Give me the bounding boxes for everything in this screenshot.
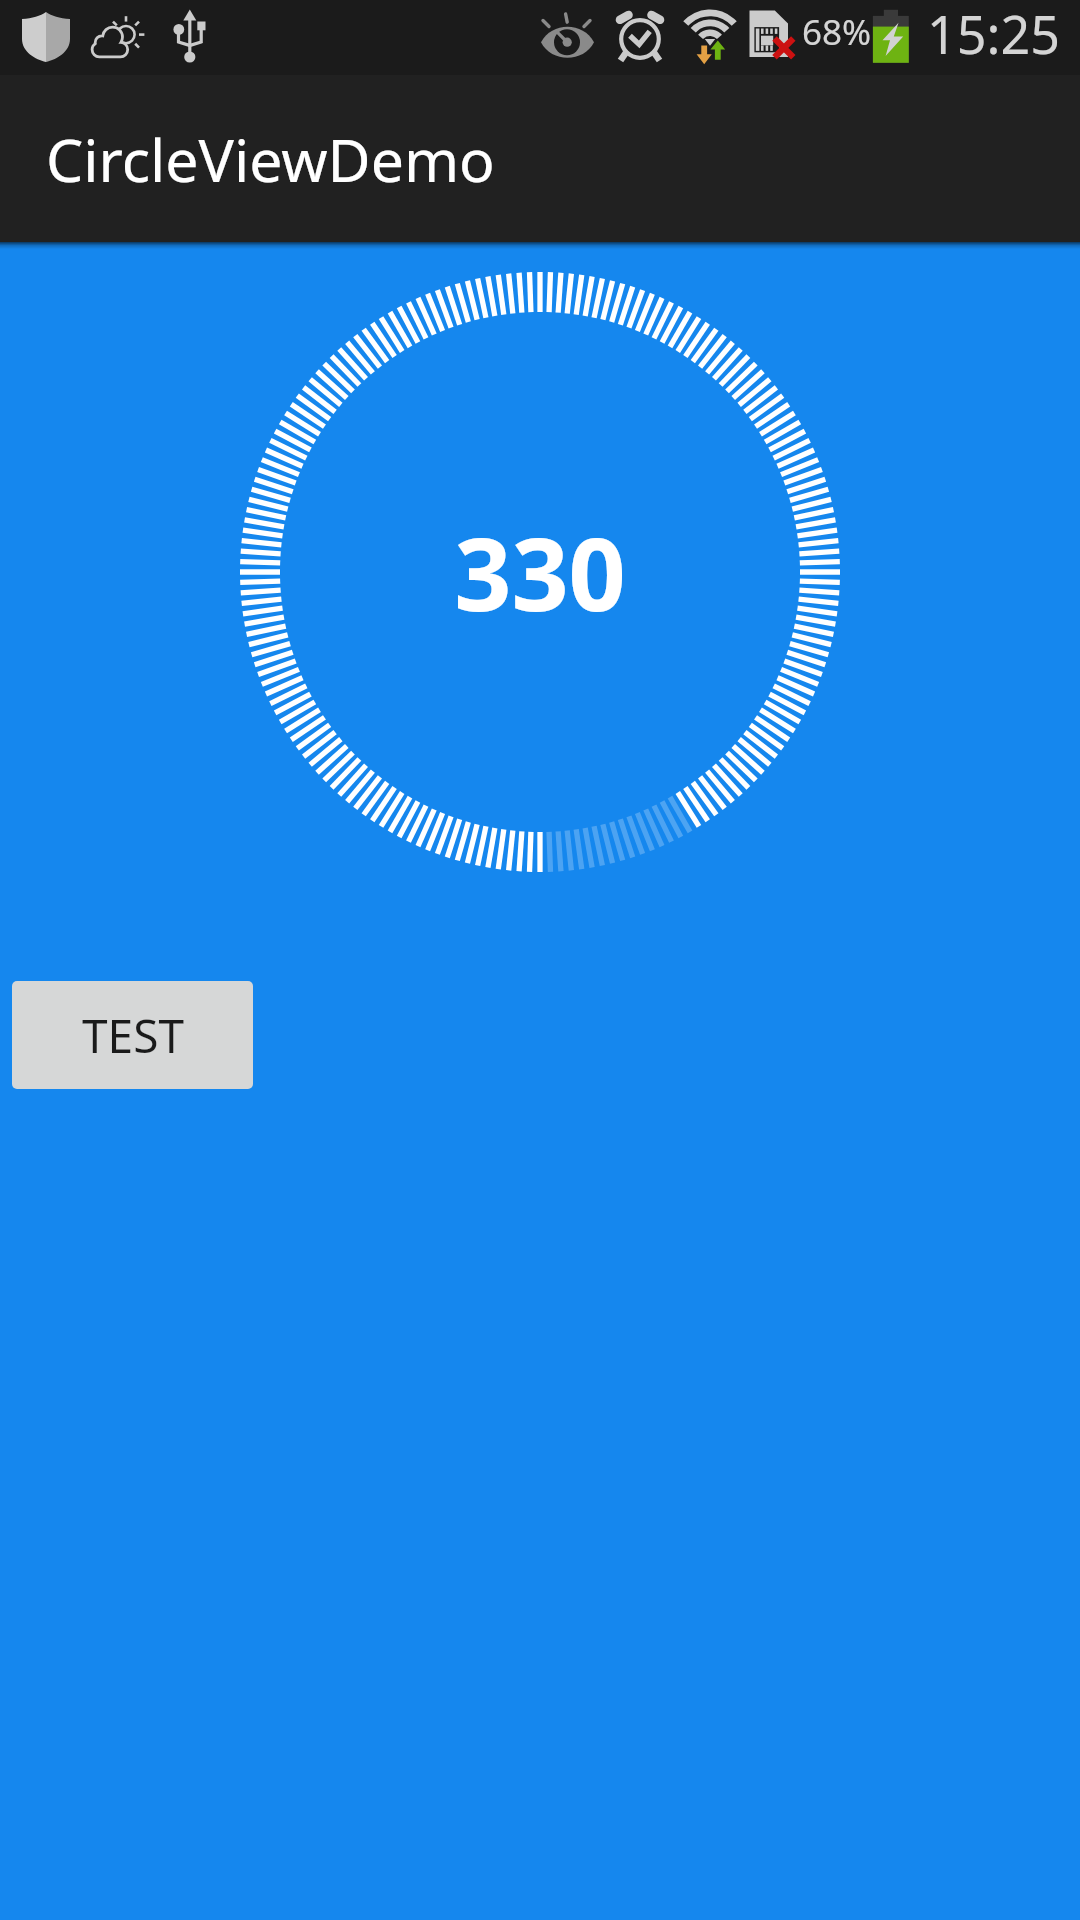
staticText: 330 [454,504,626,640]
staticText: TEST [82,1004,184,1067]
staticText: 68% [802,8,872,56]
button[interactable]: TEST [12,981,253,1089]
staticText: 15:25 [927,0,1060,69]
staticText: CircleViewDemo [46,119,495,199]
button[interactable]: Circle value selector, 330 [190,222,890,922]
